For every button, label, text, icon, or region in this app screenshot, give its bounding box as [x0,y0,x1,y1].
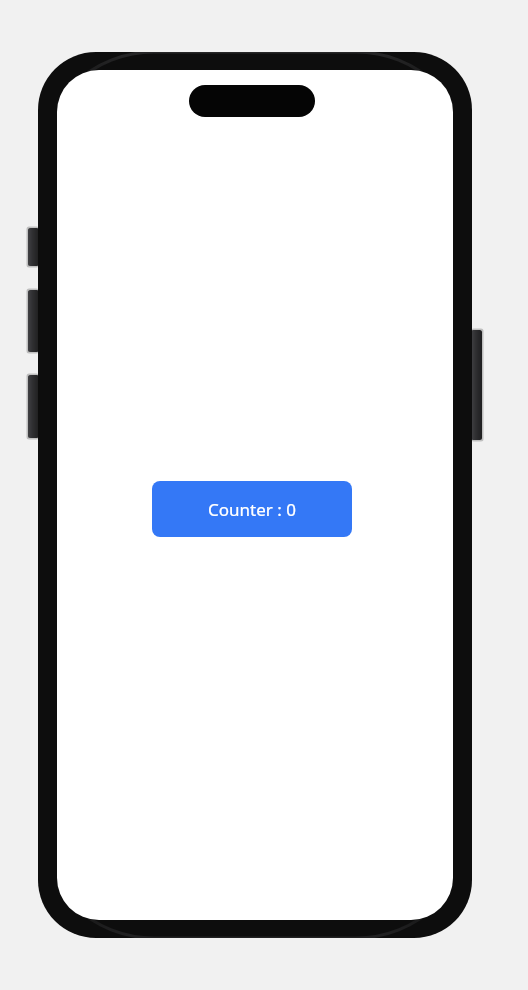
button[interactable]: Counter : 0 [152,481,352,537]
staticText: Counter : 0 [208,498,296,521]
